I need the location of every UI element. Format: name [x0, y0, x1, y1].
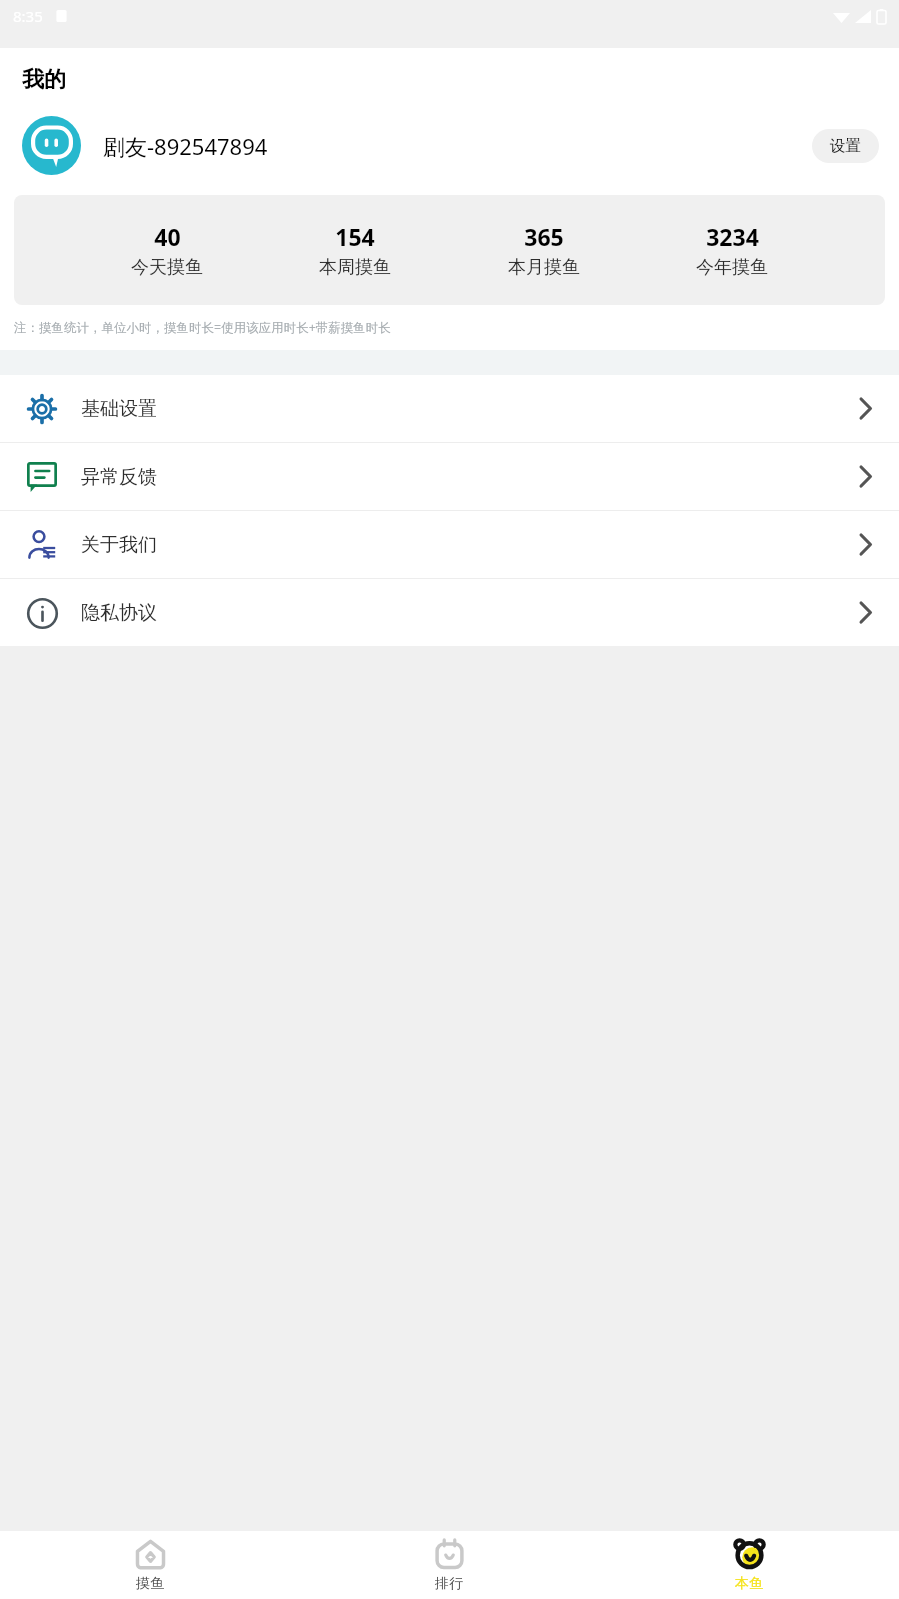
staticText: 8:35 [13, 6, 43, 26]
staticText: 我的 [22, 66, 66, 94]
staticText: 剧友-892547894 [103, 131, 268, 161]
staticText: 摸鱼 [136, 1575, 164, 1593]
staticText: 365 [524, 221, 564, 252]
staticText: 本鱼 [735, 1575, 763, 1593]
staticText: 本周摸鱼 [319, 256, 391, 279]
staticText: 今天摸鱼 [131, 256, 203, 279]
button[interactable]: 异常反馈 [0, 443, 899, 510]
staticText: 排行 [435, 1575, 463, 1593]
button[interactable]: 排行 [299, 1531, 599, 1599]
button[interactable]: 本鱼 [599, 1531, 899, 1599]
staticText: 隐私协议 [81, 601, 157, 625]
staticText: 3234 [706, 221, 759, 252]
staticText: 本月摸鱼 [508, 256, 580, 279]
staticText: 异常反馈 [81, 465, 157, 489]
staticText: 注：摸鱼统计，单位小时，摸鱼时长=使用该应用时长+带薪摸鱼时长 [14, 319, 391, 336]
button[interactable]: 基础设置 [0, 375, 899, 442]
staticText: 设置 [830, 136, 861, 156]
staticText: 基础设置 [81, 397, 157, 421]
button[interactable]: 关于我们 [0, 511, 899, 578]
button[interactable]: Avatar [22, 116, 81, 175]
button[interactable]: 摸鱼 [0, 1531, 299, 1599]
button[interactable]: 设置 [812, 129, 879, 163]
button[interactable]: 隐私协议 [0, 579, 899, 646]
staticText: 今年摸鱼 [696, 256, 768, 279]
staticText: 154 [335, 221, 375, 252]
staticText: 关于我们 [81, 533, 157, 557]
staticText: 40 [154, 221, 181, 252]
